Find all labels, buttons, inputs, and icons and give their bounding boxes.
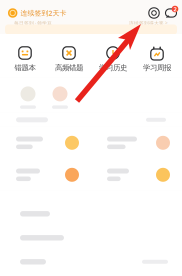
staticText: 高频错题: [55, 63, 83, 72]
button[interactable]: [91, 159, 182, 191]
button[interactable]: [91, 127, 182, 159]
button[interactable]: [0, 251, 182, 273]
button[interactable]: 高频错题: [47, 46, 91, 72]
button[interactable]: [0, 127, 91, 159]
staticText: 学习历史: [99, 63, 127, 72]
staticText: 连续签到得大奖 >: [129, 20, 168, 26]
button[interactable]: 消息: [164, 6, 178, 20]
staticText: 每日签到 · 领学豆: [14, 20, 52, 26]
button[interactable]: [0, 227, 182, 249]
button[interactable]: 学习历史: [91, 46, 135, 72]
button[interactable]: 错题本: [3, 46, 47, 72]
staticText: 2: [173, 5, 176, 13]
button[interactable]: 设置: [148, 7, 160, 19]
button[interactable]: 学习周报: [135, 46, 179, 72]
staticText: 错题本: [14, 63, 35, 72]
button[interactable]: [0, 159, 91, 191]
staticText: 学习周报: [143, 63, 171, 72]
staticText: 连续签到2天卡: [20, 8, 66, 18]
button[interactable]: [0, 203, 182, 225]
